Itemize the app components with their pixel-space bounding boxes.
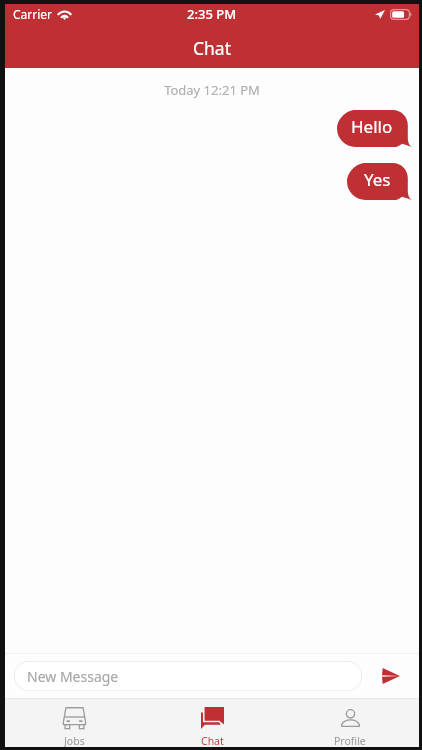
button[interactable]: Send <box>362 654 419 698</box>
staticText: 2:35 PM <box>187 5 237 23</box>
staticText: Profile <box>334 734 366 747</box>
button[interactable]: Yes <box>347 163 413 200</box>
button[interactable]: Profile <box>281 699 419 747</box>
button[interactable]: Hello <box>337 110 413 147</box>
staticText: Carrier <box>13 6 53 22</box>
staticText: Hello <box>351 115 393 138</box>
button[interactable]: New Message <box>14 661 362 691</box>
staticText: Today 12:21 PM <box>5 81 419 99</box>
button[interactable]: Chat <box>143 699 281 747</box>
staticText: Jobs <box>64 734 85 747</box>
staticText: Chat <box>193 36 232 60</box>
staticText: New Message <box>27 667 119 686</box>
staticText: Yes <box>364 168 391 191</box>
staticText: Chat <box>201 734 224 747</box>
button[interactable]: Jobs <box>5 699 143 747</box>
